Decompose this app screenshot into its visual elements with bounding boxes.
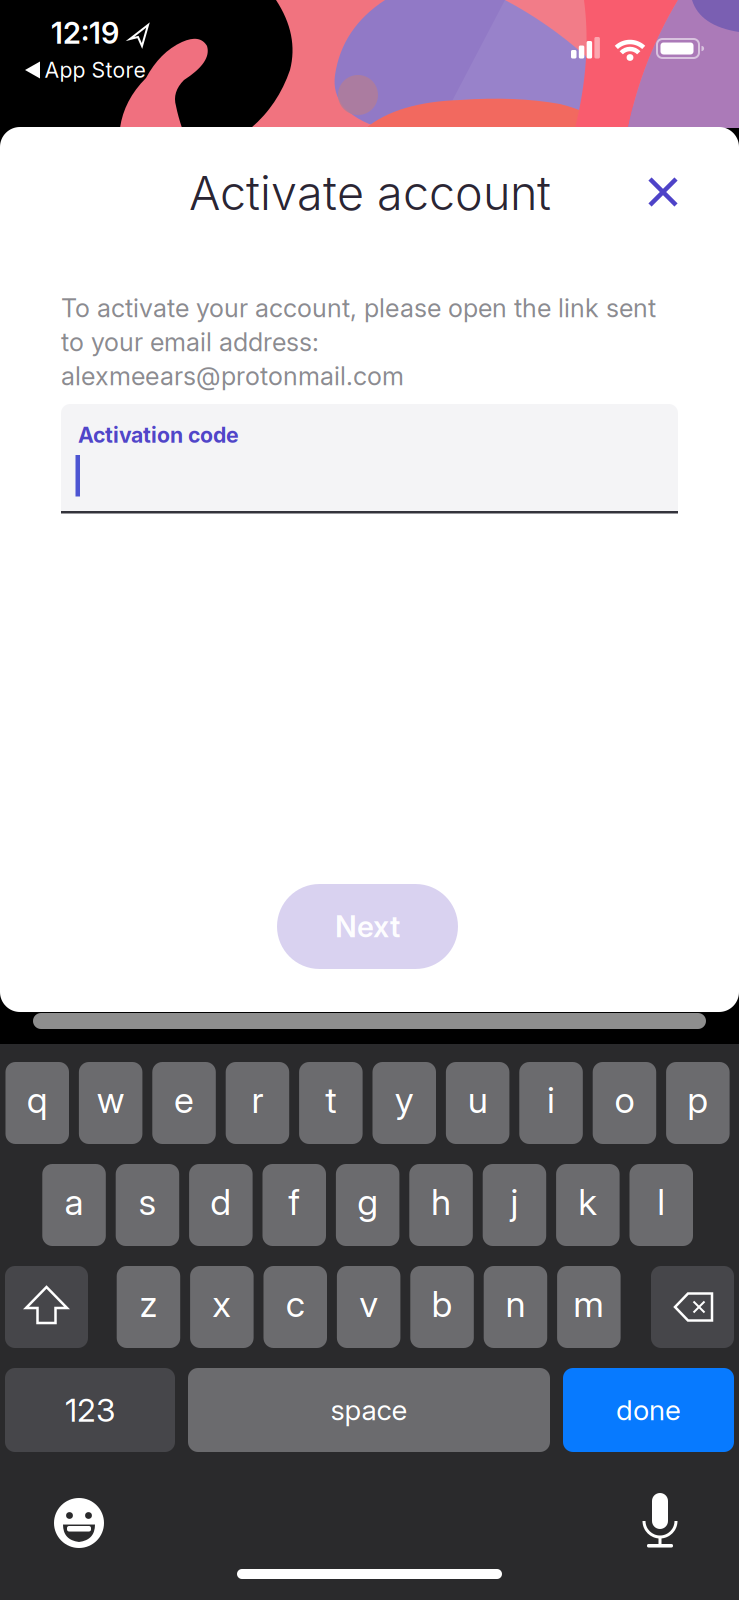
button[interactable]: Activation code [61, 404, 678, 514]
staticText: m [573, 1282, 604, 1326]
staticText: n [505, 1282, 525, 1326]
staticText: z [139, 1282, 157, 1326]
staticText: g [357, 1180, 378, 1224]
button[interactable]: o [593, 1062, 656, 1144]
button[interactable] [651, 1266, 734, 1348]
staticText: To activate your account, please open th… [61, 293, 656, 323]
staticText: x [212, 1282, 231, 1326]
button[interactable]: g [336, 1164, 399, 1246]
staticText: b [432, 1282, 453, 1326]
button[interactable]: 123 [5, 1368, 175, 1452]
button[interactable]: s [116, 1164, 179, 1246]
button[interactable] [633, 1493, 687, 1549]
staticText: f [288, 1180, 300, 1224]
staticText: q [27, 1078, 48, 1122]
button[interactable]: p [666, 1062, 730, 1144]
staticText: e [174, 1078, 194, 1122]
staticText: Next [335, 909, 400, 944]
button[interactable]: q [5, 1062, 69, 1144]
staticText: s [138, 1180, 156, 1224]
button[interactable]: Next [277, 884, 458, 969]
staticText: i [547, 1078, 555, 1122]
button[interactable]: j [483, 1164, 546, 1246]
button[interactable]: y [372, 1062, 436, 1144]
staticText: t [325, 1078, 336, 1122]
staticText: Activation code [78, 422, 239, 448]
button[interactable]: space [188, 1368, 550, 1452]
staticText: 123 [65, 1391, 115, 1429]
button[interactable]: u [446, 1062, 509, 1144]
staticText: d [210, 1180, 231, 1224]
button[interactable]: r [226, 1062, 289, 1144]
button[interactable]: done [563, 1368, 734, 1452]
button[interactable]: n [484, 1266, 547, 1348]
button[interactable]: d [189, 1164, 253, 1246]
staticText: h [431, 1180, 451, 1224]
button[interactable]: z [117, 1266, 180, 1348]
staticText: o [614, 1078, 634, 1122]
staticText: j [510, 1180, 518, 1224]
button[interactable]: e [152, 1062, 216, 1144]
staticText: w [97, 1078, 125, 1122]
staticText: done [616, 1393, 681, 1427]
staticText: App Store [44, 57, 145, 83]
button[interactable]: b [410, 1266, 474, 1348]
staticText: k [578, 1180, 597, 1224]
staticText: Activate account [189, 165, 551, 221]
button[interactable] [5, 1266, 88, 1348]
staticText: to your email address: [61, 327, 319, 357]
button[interactable]: m [557, 1266, 621, 1348]
button[interactable]: f [262, 1164, 326, 1246]
button[interactable]: h [409, 1164, 473, 1246]
button[interactable]: v [337, 1266, 400, 1348]
staticText: a [64, 1180, 83, 1224]
button[interactable]: k [556, 1164, 620, 1246]
button[interactable]: i [519, 1062, 583, 1144]
button[interactable]: c [263, 1266, 327, 1348]
staticText: r [251, 1078, 263, 1122]
button[interactable]: w [79, 1062, 142, 1144]
staticText: u [468, 1078, 488, 1122]
staticText: c [286, 1282, 305, 1326]
button[interactable]: t [299, 1062, 363, 1144]
button[interactable]: x [190, 1266, 254, 1348]
button[interactable] [636, 165, 690, 219]
staticText: v [359, 1282, 378, 1326]
staticText: 12:19 [51, 15, 119, 51]
button[interactable]: l [629, 1164, 693, 1246]
button[interactable] [52, 1496, 106, 1550]
staticText: l [657, 1180, 665, 1224]
staticText: p [687, 1078, 708, 1122]
staticText: alexmeears@protonmail.com [61, 361, 404, 391]
button[interactable]: App Store [44, 57, 145, 83]
button[interactable]: a [42, 1164, 106, 1246]
staticText: space [330, 1393, 407, 1427]
staticText: y [395, 1078, 414, 1122]
